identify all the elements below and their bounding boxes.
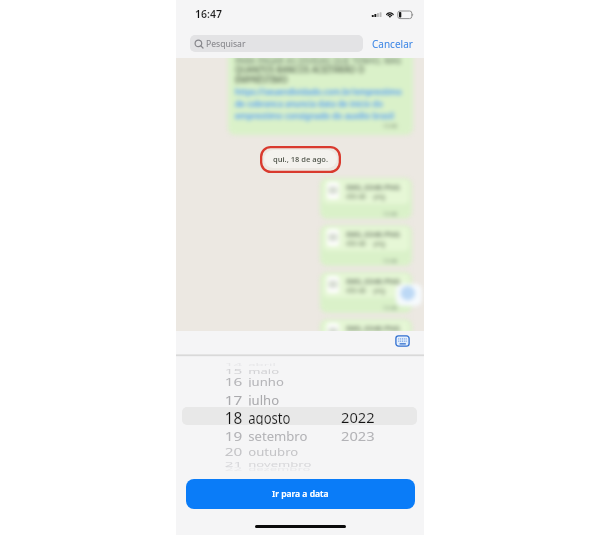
- staticText: outubro: [248, 445, 299, 457]
- staticText: 21: [225, 458, 242, 467]
- staticText: 16:47: [195, 7, 222, 21]
- staticText: 18: [225, 407, 242, 425]
- button[interactable]: Ir para o fim da conversa: [396, 284, 422, 306]
- staticText: 19: [225, 428, 242, 442]
- staticText: 14: [225, 362, 242, 366]
- staticText: 16: [225, 375, 242, 387]
- button[interactable]: Mostrar teclado: [395, 335, 410, 347]
- staticText: 13:46: [383, 304, 398, 312]
- staticText: dezembro: [248, 466, 311, 471]
- staticText: EMPRÉSTIMO: [235, 74, 288, 85]
- button[interactable]: 19: [176, 428, 384, 442]
- button[interactable]: Ir para a data: [186, 479, 415, 509]
- staticText: 13:40: [383, 122, 398, 130]
- button[interactable]: 18: [176, 407, 384, 425]
- staticText: 450 kB · png: [346, 286, 386, 294]
- staticText: Pesquisar: [206, 38, 246, 50]
- button[interactable]: 16: [176, 375, 384, 387]
- button[interactable]: IMG_0348.PNG: [320, 272, 412, 313]
- staticText: 13:46: [383, 210, 398, 218]
- staticText: novembro: [248, 458, 312, 467]
- staticText: QUANTOS BANCOS ACEITARÃO O: [235, 64, 365, 75]
- staticText: 2023: [341, 428, 375, 442]
- staticText: de cobranca anuncia data de inicio do: [235, 98, 383, 109]
- staticText: IMG_0348.PNG: [346, 229, 400, 239]
- button[interactable]: 20: [176, 445, 384, 457]
- button[interactable]: Cancelar: [370, 34, 415, 54]
- button[interactable]: qui., 18 de ago.: [264, 150, 337, 168]
- staticText: 13:46: [383, 257, 398, 265]
- button[interactable]: 22: [176, 466, 384, 471]
- staticText: julho: [248, 391, 279, 405]
- button[interactable]: Pesquisar: [190, 35, 363, 52]
- staticText: abril: [248, 362, 276, 366]
- button[interactable]: 21: [176, 458, 384, 467]
- button[interactable]: IMG_0348.PNG: [320, 225, 412, 266]
- button[interactable]: 15: [176, 366, 384, 374]
- button[interactable]: IMG_0348.PNG: [320, 319, 412, 331]
- staticText: Ir para a data: [272, 488, 329, 500]
- staticText: setembro: [248, 428, 308, 442]
- staticText: maio: [248, 366, 279, 374]
- staticText: IMG_0348.PNG: [346, 182, 400, 192]
- staticText: IMG_0348.PNG: [346, 276, 400, 286]
- staticText: junho: [248, 375, 284, 387]
- staticText: agosto: [248, 407, 291, 425]
- staticText: https://seuendividado.com.br/emprestimo: [235, 86, 402, 97]
- button[interactable]: 17: [176, 391, 384, 405]
- staticText: Cancelar: [372, 37, 413, 51]
- button[interactable]: PARA PAGAR AS DIVIDAS QUE TENHO, MAS: [228, 58, 413, 135]
- button[interactable]: IMG_0348.PNG: [320, 178, 412, 219]
- staticText: 450 kB · png: [346, 192, 386, 200]
- staticText: emprestimo consignado do auxilio brasil: [235, 110, 394, 121]
- staticText: 17: [225, 391, 242, 405]
- staticText: PARA PAGAR AS DIVIDAS QUE TENHO, MAS: [235, 58, 402, 66]
- staticText: 2022: [341, 407, 375, 425]
- staticText: qui., 18 de ago.: [273, 154, 329, 164]
- staticText: 450 kB · png: [346, 239, 386, 247]
- staticText: 15: [225, 366, 242, 374]
- staticText: 22: [225, 466, 242, 471]
- staticText: IMG_0348.PNG: [346, 323, 400, 331]
- staticText: 20: [225, 445, 242, 457]
